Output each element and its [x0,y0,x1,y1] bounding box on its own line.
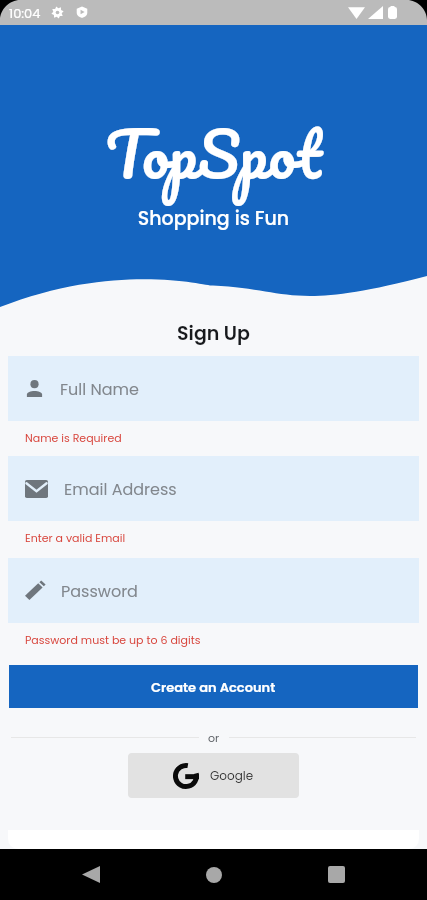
staticText: Full Name [60,378,139,400]
staticText: Google [210,767,254,784]
staticText: Email Address [64,478,177,500]
staticText: Shopping is Fun [0,205,427,232]
staticText: Sign Up [0,320,427,347]
button[interactable]: Recent apps [275,849,398,900]
button[interactable]: Back [29,849,152,900]
staticText: Enter a valid Email [25,530,126,545]
staticText: Create an Account [151,678,276,696]
button[interactable]: Full Name [8,356,419,421]
button[interactable]: Google [128,753,299,798]
staticText: or [208,730,220,745]
staticText: TopSpot [0,101,427,206]
button[interactable]: Email Address [8,456,419,521]
staticText: Password [61,580,138,602]
button[interactable]: Password [8,558,419,623]
staticText: Name is Required [25,430,122,445]
button[interactable]: Create an Account [9,665,418,708]
staticText: 10:04 [9,4,41,22]
staticText: Password must be up to 6 digits [25,632,201,647]
button[interactable]: Home [152,849,275,900]
